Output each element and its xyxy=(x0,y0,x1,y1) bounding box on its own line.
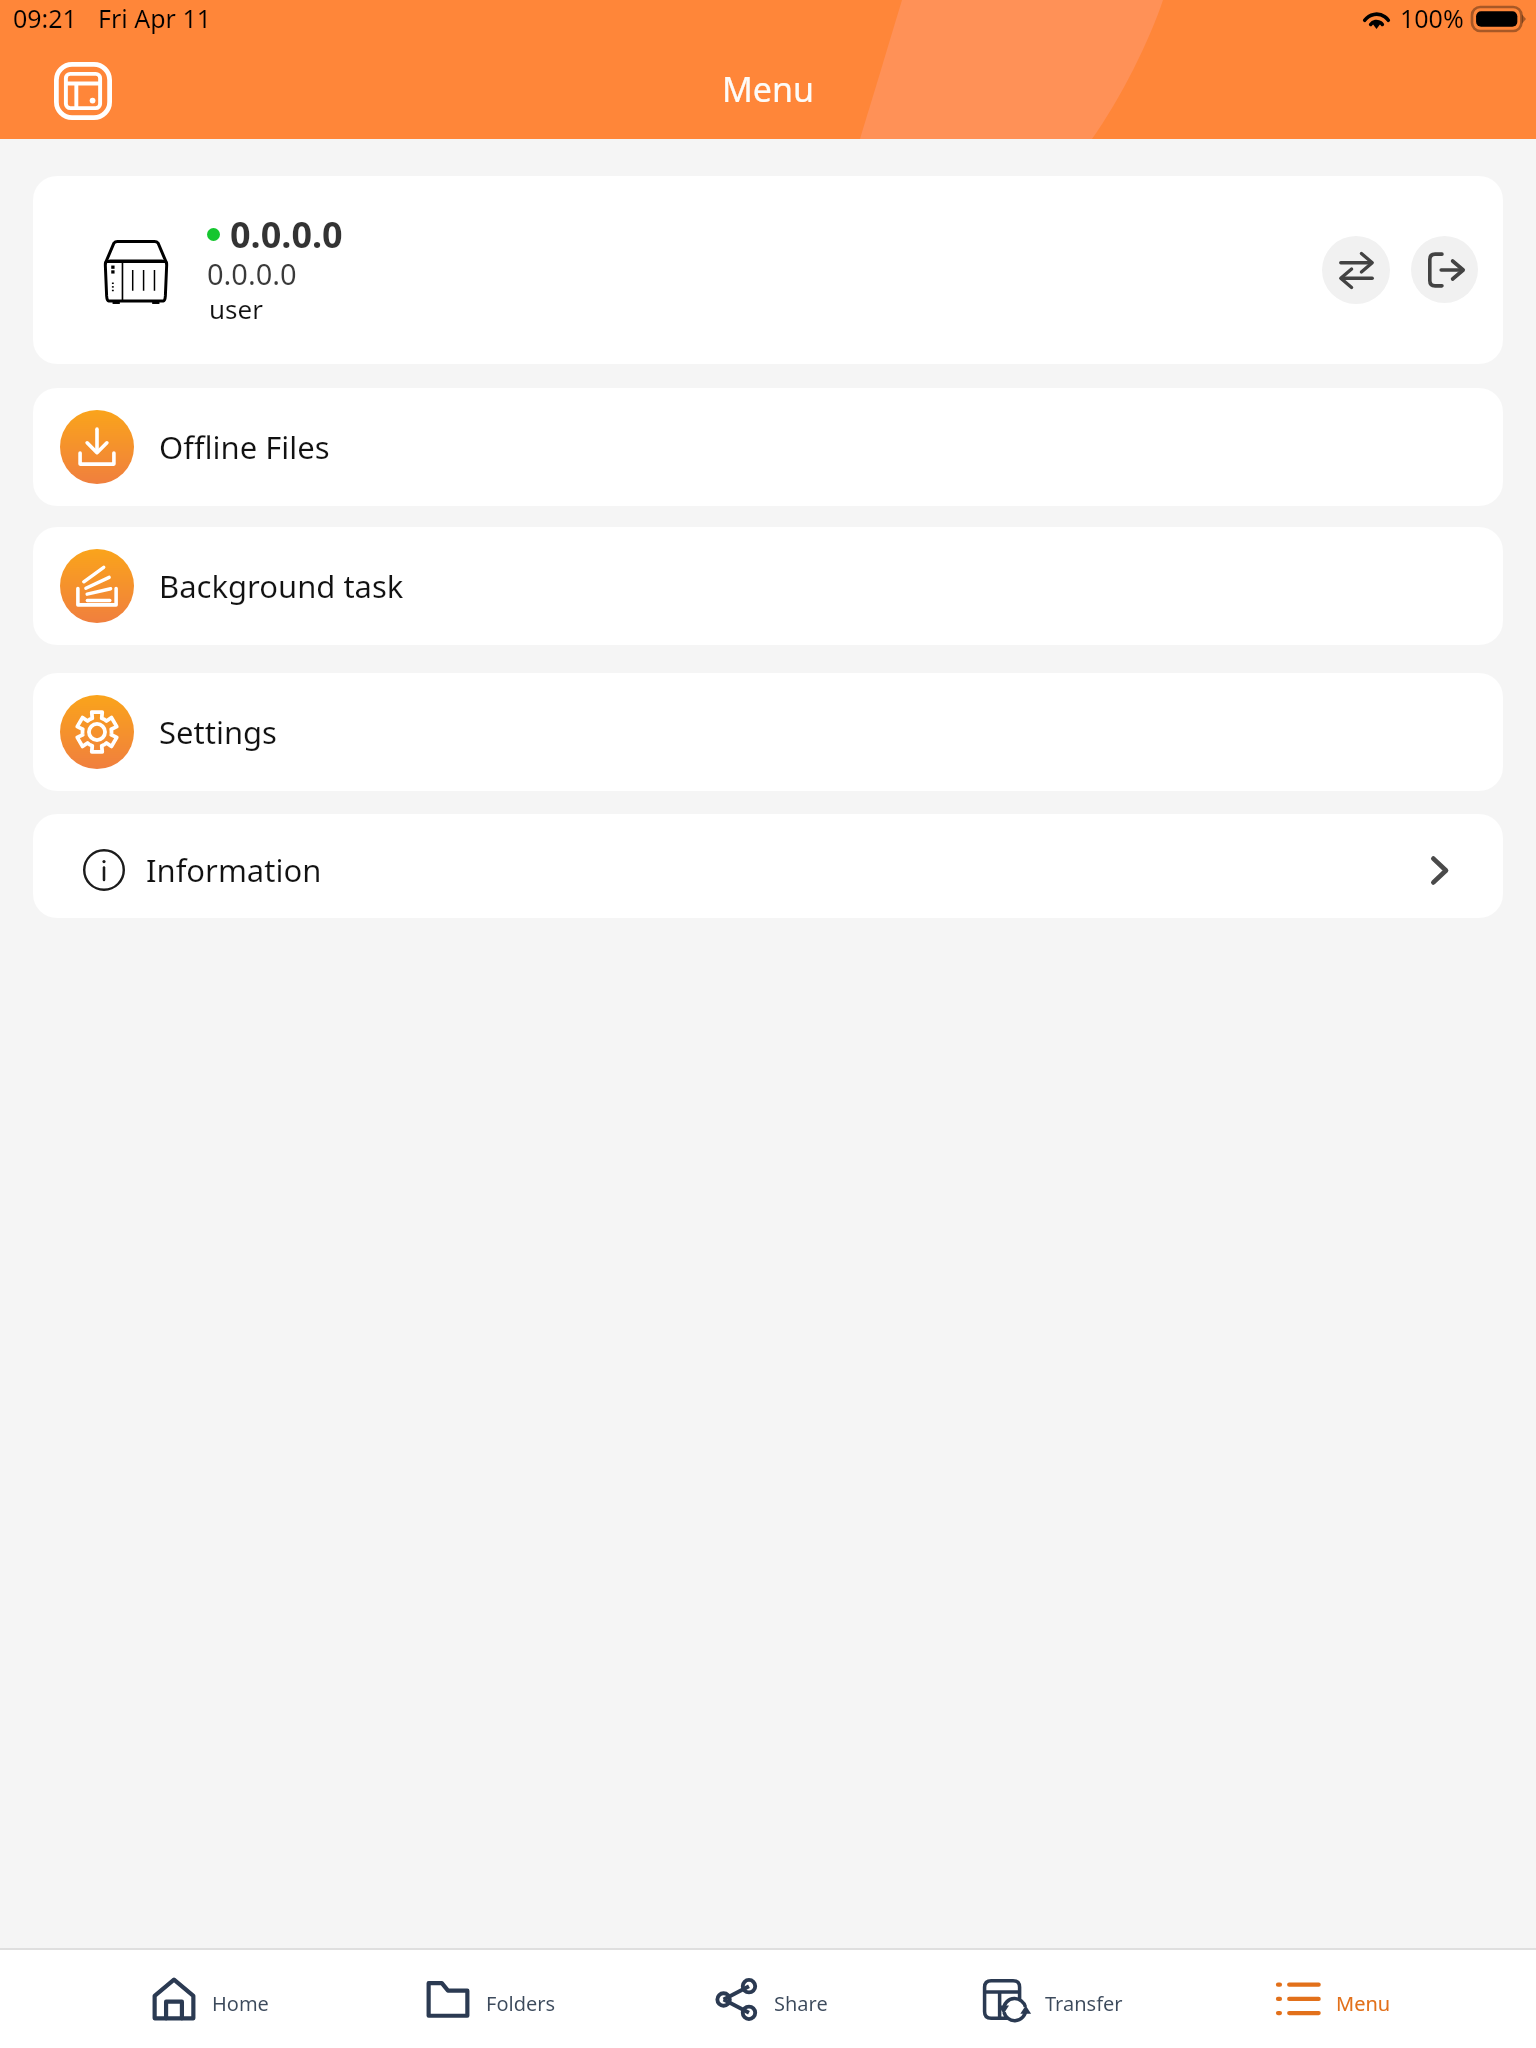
button[interactable]: Offline Files xyxy=(33,388,1503,506)
button[interactable]: Home xyxy=(70,1950,350,2048)
staticText: 0.0.0.0 xyxy=(207,254,297,293)
button[interactable]: 0.0.0.0 xyxy=(33,176,1503,364)
button[interactable]: Information xyxy=(33,814,1503,918)
staticText: Settings xyxy=(159,711,277,753)
staticText: Transfer xyxy=(1045,1990,1123,2017)
staticText: Folders xyxy=(486,1990,556,2017)
staticText: Offline Files xyxy=(159,426,330,468)
staticText: Home xyxy=(212,1990,269,2017)
staticText: Information xyxy=(146,849,322,891)
button[interactable]: Folders xyxy=(350,1950,631,2048)
staticText: 100% xyxy=(1400,1,1464,35)
staticText: 0.0.0.0 xyxy=(230,210,343,259)
button[interactable]: Switch server xyxy=(1322,236,1390,304)
button[interactable]: Log out xyxy=(1411,236,1478,303)
button[interactable]: Share xyxy=(631,1950,912,2048)
staticText: Menu xyxy=(722,66,815,112)
staticText: Background task xyxy=(159,565,404,607)
button[interactable]: Menu xyxy=(1193,1950,1474,2048)
staticText: Menu xyxy=(1336,1990,1391,2017)
staticText: 09:21 xyxy=(13,1,77,35)
staticText: user xyxy=(209,291,263,326)
button[interactable]: Background task xyxy=(33,527,1503,645)
button[interactable]: Layout xyxy=(46,54,120,128)
staticText: Share xyxy=(774,1990,828,2017)
button[interactable]: Settings xyxy=(33,673,1503,791)
button[interactable]: Transfer xyxy=(912,1950,1193,2048)
staticText: Fri Apr 11 xyxy=(98,1,212,35)
